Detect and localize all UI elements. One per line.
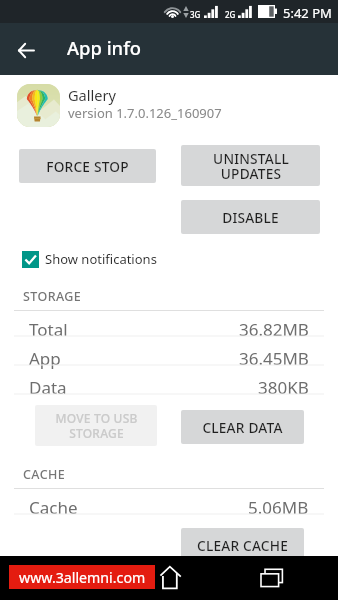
staticText: App info: [67, 35, 141, 60]
staticText: 36.82MB: [239, 318, 309, 341]
button[interactable]: App: [0, 347, 338, 375]
staticText: FORCE STOP: [46, 157, 129, 176]
button[interactable]: Back: [7, 31, 45, 69]
staticText: STORAGE: [23, 288, 82, 305]
staticText: UNINSTALL UPDATES: [213, 149, 289, 183]
staticText: Data: [29, 376, 67, 399]
button[interactable]: Cache: [0, 496, 338, 524]
button[interactable]: MOVE TO USB STORAGE: [35, 405, 157, 446]
staticText: 2G: [225, 9, 236, 20]
button[interactable]: Show notifications: [22, 250, 157, 268]
staticText: MOVE TO USB STORAGE: [55, 410, 138, 441]
button[interactable]: UNINSTALL UPDATES: [181, 145, 320, 186]
staticText: www.3allemni.com: [19, 568, 146, 587]
button[interactable]: CLEAR DATA: [181, 410, 304, 444]
staticText: CACHE: [23, 466, 66, 483]
button[interactable]: DISABLE: [181, 200, 320, 234]
staticText: 36.45MB: [239, 347, 309, 370]
button[interactable]: Total: [0, 318, 338, 346]
staticText: version 1.7.0.126_160907: [68, 104, 222, 122]
staticText: Total: [29, 318, 68, 341]
button[interactable]: Data: [0, 376, 338, 404]
staticText: App: [29, 347, 61, 370]
button[interactable]: CLEAR CACHE: [181, 528, 304, 562]
staticText: 380KB: [258, 376, 309, 399]
staticText: CLEAR DATA: [202, 418, 283, 437]
button[interactable]: FORCE STOP: [19, 149, 156, 183]
staticText: Cache: [29, 496, 78, 519]
button[interactable]: Home: [158, 565, 182, 591]
staticText: CLEAR CACHE: [197, 536, 288, 555]
staticText: 3G: [190, 9, 201, 20]
staticText: 5:42 PM: [283, 4, 332, 22]
staticText: 5.06MB: [248, 496, 309, 519]
staticText: Gallery: [68, 85, 117, 105]
button[interactable]: Recents: [255, 562, 287, 590]
staticText: Show notifications: [45, 250, 157, 268]
staticText: DISABLE: [222, 208, 279, 227]
